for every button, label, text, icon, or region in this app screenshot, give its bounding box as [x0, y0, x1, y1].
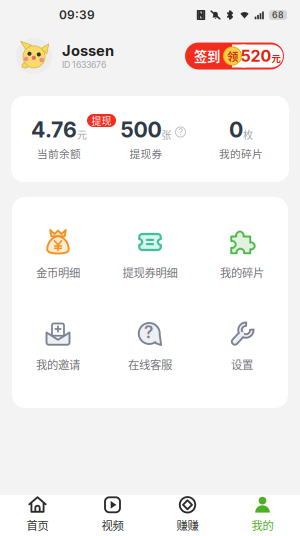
staticText: Jossen: [62, 42, 114, 60]
button[interactable]: 视频: [75, 495, 150, 536]
staticText: ?: [144, 321, 153, 342]
button[interactable]: 首页: [0, 495, 75, 536]
staticText: 视频: [101, 517, 123, 533]
staticText: 领: [227, 48, 238, 64]
staticText: 500: [120, 117, 161, 143]
staticText: 提现: [91, 113, 111, 128]
staticText: 当前余额: [37, 146, 81, 161]
staticText: ?: [178, 127, 182, 137]
button[interactable]: 签到: [185, 42, 284, 69]
button[interactable]: 赚赚: [150, 495, 225, 536]
button[interactable]: ?: [104, 319, 196, 385]
staticText: 赚赚: [176, 517, 198, 533]
button[interactable]: 我的: [225, 495, 300, 536]
staticText: 元: [77, 127, 87, 142]
button[interactable]: 提现: [87, 114, 116, 127]
staticText: ID 1633676: [62, 60, 106, 70]
staticText: 提现券明细: [122, 264, 177, 280]
staticText: 09:39: [59, 8, 95, 22]
staticText: 在线客服: [128, 356, 172, 372]
staticText: 元: [271, 51, 280, 65]
staticText: 我的: [251, 517, 273, 533]
staticText: 提现券: [129, 146, 162, 161]
staticText: 签到: [194, 46, 220, 66]
staticText: 我的邀请: [36, 356, 80, 372]
staticText: 我的碎片: [220, 264, 264, 280]
staticText: 4.76: [31, 117, 77, 143]
button[interactable]: 金币明细: [12, 227, 104, 293]
staticText: 金币明细: [36, 264, 80, 280]
button[interactable]: 提现券明细: [104, 227, 196, 293]
staticText: 枚: [243, 127, 253, 142]
button[interactable]: 我的邀请: [12, 319, 104, 385]
staticText: 首页: [26, 517, 48, 533]
staticText: 520: [240, 46, 271, 66]
button[interactable]: 我的碎片: [196, 227, 288, 293]
staticText: 我的碎片: [219, 146, 263, 161]
staticText: 设置: [231, 356, 253, 372]
button[interactable]: 设置: [196, 319, 288, 385]
staticText: 68: [272, 10, 284, 20]
staticText: 张: [161, 127, 171, 142]
staticText: 0: [229, 117, 243, 143]
